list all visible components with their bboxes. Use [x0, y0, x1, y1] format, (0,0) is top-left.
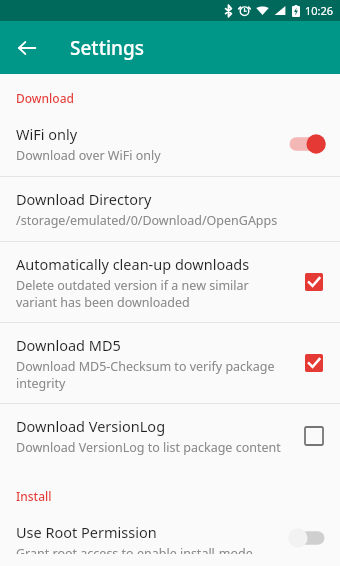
button[interactable]: Checked	[302, 351, 326, 375]
staticText: 10:26	[305, 3, 334, 18]
staticText: /storage/emulated/0/Download/OpenGApps	[16, 212, 278, 229]
staticText: Grant root access to enable install-mode…	[16, 545, 278, 554]
staticText: Download Directory	[16, 189, 152, 209]
button[interactable]: Download MD5	[0, 323, 340, 403]
staticText: WiFi only	[16, 124, 78, 144]
staticText: Use Root Permission	[16, 522, 157, 542]
button[interactable]: WiFi only toggle	[288, 133, 326, 155]
button[interactable]: Checked	[302, 270, 326, 294]
staticText: Settings	[70, 35, 144, 61]
button[interactable]: Use Root Permission toggle	[288, 527, 326, 549]
staticText: Download	[16, 90, 74, 106]
button[interactable]: Back	[9, 30, 45, 66]
staticText: Install	[16, 488, 52, 504]
button[interactable]: WiFi only	[0, 116, 340, 176]
button[interactable]: Use Root Permission	[0, 514, 340, 566]
staticText: Download MD5-Checksum to verify package …	[16, 358, 292, 391]
staticText: Download VersionLog to list package cont…	[16, 439, 281, 456]
staticText: Automatically clean-up downloads	[16, 254, 250, 274]
staticText: Download MD5	[16, 335, 121, 355]
staticText: Delete outdated version if a new similar…	[16, 277, 292, 310]
staticText: Download over WiFi only	[16, 147, 161, 164]
staticText: Download VersionLog	[16, 416, 166, 436]
button[interactable]: Download VersionLog	[0, 404, 340, 468]
button[interactable]: Unchecked	[302, 424, 326, 448]
button[interactable]: Download Directory	[0, 177, 340, 241]
button[interactable]: Automatically clean-up downloads	[0, 242, 340, 322]
